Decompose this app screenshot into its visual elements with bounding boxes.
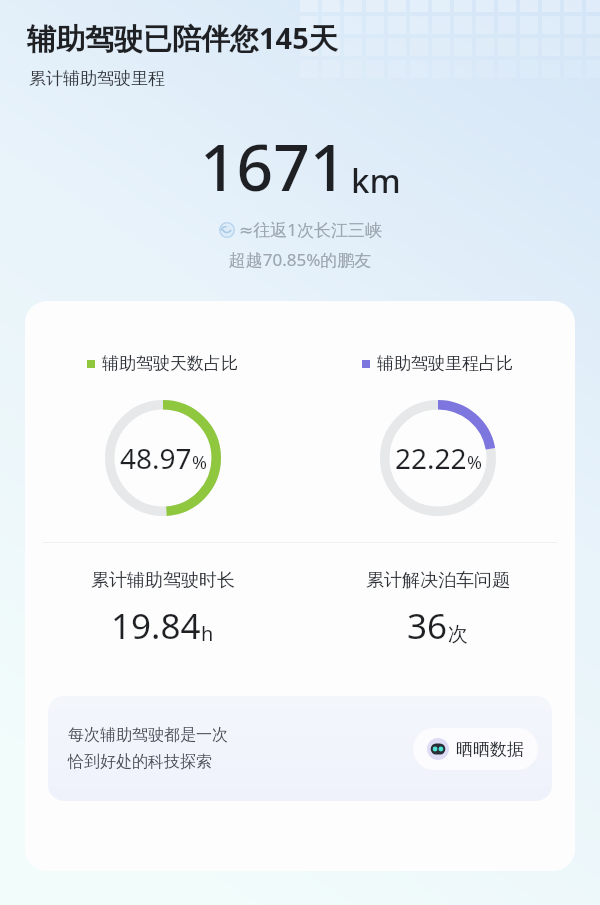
staticText: km: [351, 158, 401, 203]
staticText: 1671: [200, 123, 347, 210]
staticText: 19.84: [111, 602, 201, 650]
staticText: 累计辅助驾驶时长: [91, 569, 235, 592]
staticText: 辅助驾驶里程占比: [377, 353, 513, 374]
staticText: 22.22: [395, 439, 467, 477]
button[interactable]: 晒晒数据: [413, 728, 538, 770]
staticText: ≈往返1次长江三峡: [239, 218, 382, 241]
button[interactable]: 累计辅助驾驶时长: [25, 569, 300, 650]
staticText: 辅助驾驶天数占比: [102, 353, 238, 374]
staticText: %: [192, 450, 207, 475]
staticText: h: [201, 620, 214, 647]
button[interactable]: 累计解决泊车问题: [300, 569, 575, 650]
staticText: 48.97: [120, 439, 192, 477]
staticText: 累计辅助驾驶里程: [29, 68, 165, 89]
staticText: 每次辅助驾驶都是一次恰到好处的科技探索: [68, 725, 243, 772]
button[interactable]: 辅助驾驶里程占比: [300, 353, 575, 516]
staticText: %: [467, 450, 482, 475]
button[interactable]: 辅助驾驶天数占比: [25, 353, 300, 516]
staticText: 次: [448, 622, 468, 647]
staticText: 辅助驾驶已陪伴您145天: [27, 18, 338, 58]
staticText: 累计解决泊车问题: [366, 569, 510, 592]
staticText: 超越70.85%的鹏友: [0, 248, 600, 271]
staticText: 晒晒数据: [456, 739, 524, 760]
staticText: 36: [407, 602, 448, 650]
